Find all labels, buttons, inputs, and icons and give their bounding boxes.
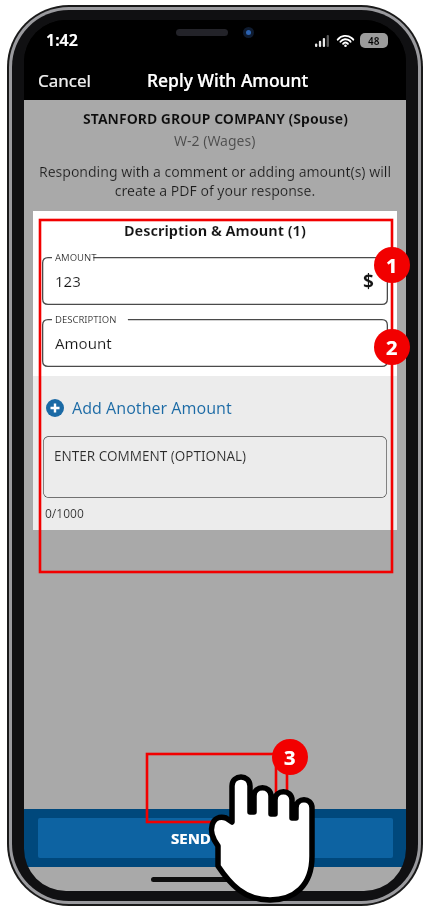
staticText: W-2 (Wages)	[174, 131, 256, 150]
staticText: SEND REPLY	[171, 828, 260, 848]
staticText: AMOUNT	[55, 251, 97, 264]
staticText: 48	[368, 34, 380, 48]
other: Tap pointer	[0, 0, 430, 911]
staticText: Amount	[55, 333, 112, 353]
button[interactable]: ENTER COMMENT (OPTIONAL)	[43, 436, 387, 498]
staticText: 2	[386, 334, 398, 361]
staticText: Responding with a comment or adding amou…	[36, 162, 394, 200]
staticText: 3	[284, 744, 296, 771]
button[interactable]: 123	[42, 249, 388, 305]
staticText: 1:42	[46, 29, 78, 51]
button[interactable]: Cancel	[24, 62, 105, 99]
button[interactable]: Add Another Amount	[44, 393, 234, 423]
staticText: DESCRIPTION	[55, 313, 117, 326]
staticText: 0/1000	[45, 505, 84, 521]
staticText: 1	[386, 252, 398, 279]
staticText: STANFORD GROUP COMPANY (Spouse)	[83, 109, 348, 128]
button[interactable]: Amount	[42, 311, 388, 367]
staticText: ENTER COMMENT (OPTIONAL)	[54, 447, 247, 465]
staticText: 123	[55, 271, 81, 291]
staticText: Description & Amount (1)	[124, 220, 306, 240]
staticText: Cancel	[38, 69, 91, 92]
button[interactable]: SEND REPLY	[38, 818, 393, 858]
staticText: Reply With Amount	[147, 68, 309, 92]
staticText: $	[363, 268, 374, 294]
staticText: Add Another Amount	[72, 397, 232, 419]
